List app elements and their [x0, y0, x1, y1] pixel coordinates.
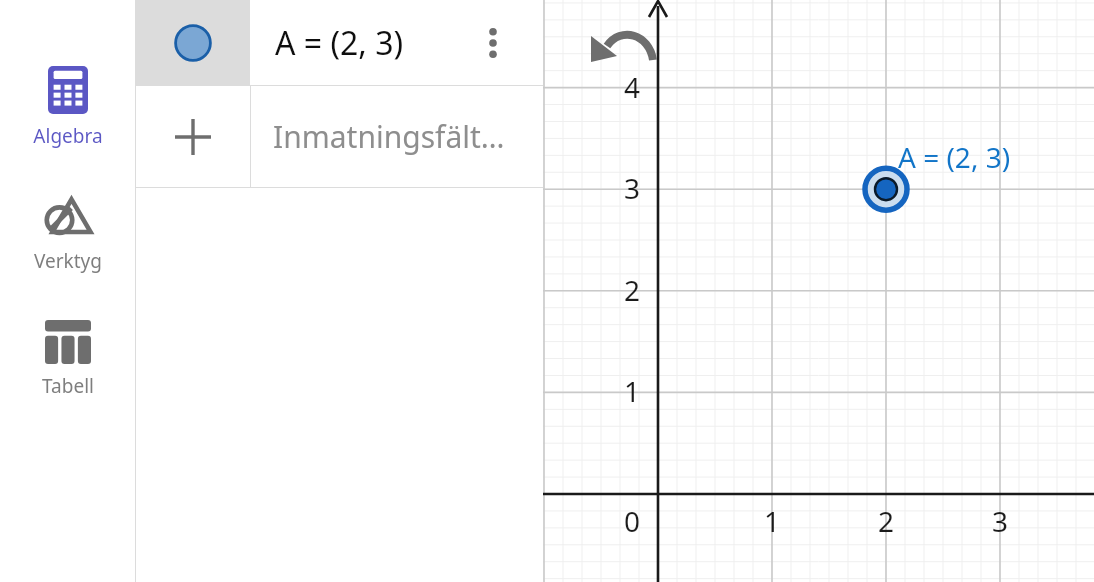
button[interactable]: Show or hide point A: [136, 0, 250, 86]
staticText: A = (2, 3): [275, 21, 404, 65]
button[interactable]: More options: [473, 23, 513, 63]
button[interactable]: Inmatningsfält…: [250, 86, 543, 187]
staticText: 4: [624, 68, 641, 106]
button[interactable]: Verktyg: [0, 195, 135, 274]
staticText: Algebra: [33, 123, 103, 149]
staticText: 3: [992, 502, 1009, 540]
staticText: 2: [624, 271, 641, 309]
button[interactable]: Algebra: [0, 66, 135, 149]
button[interactable]: Tabell: [0, 320, 135, 399]
staticText: 3: [624, 169, 641, 207]
staticText: 1: [624, 372, 641, 410]
staticText: 1: [764, 502, 781, 540]
button[interactable]: A = (2, 3): [250, 0, 543, 86]
staticText: 0: [624, 502, 641, 540]
staticText: Verktyg: [34, 248, 102, 274]
staticText: Tabell: [42, 373, 94, 399]
staticText: Inmatningsfält…: [273, 116, 505, 157]
staticText: 2: [878, 502, 895, 540]
button[interactable]: 1: [543, 0, 1094, 582]
button[interactable]: Add new input row: [136, 86, 250, 187]
staticText: A = (2, 3): [898, 138, 1011, 176]
